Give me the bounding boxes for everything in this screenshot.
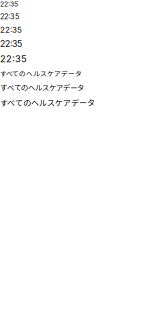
staticText: 22:35: [0, 12, 19, 21]
staticText: すべてのヘルスケアデータ: [0, 82, 84, 93]
staticText: 22:35: [0, 53, 27, 64]
staticText: 22:35: [0, 25, 22, 35]
staticText: 22:35: [0, 0, 18, 8]
staticText: すべてのヘルスケアデータ: [0, 97, 95, 108]
staticText: すべてのヘルスケアデータ: [0, 68, 82, 78]
staticText: 22:35: [0, 39, 22, 49]
